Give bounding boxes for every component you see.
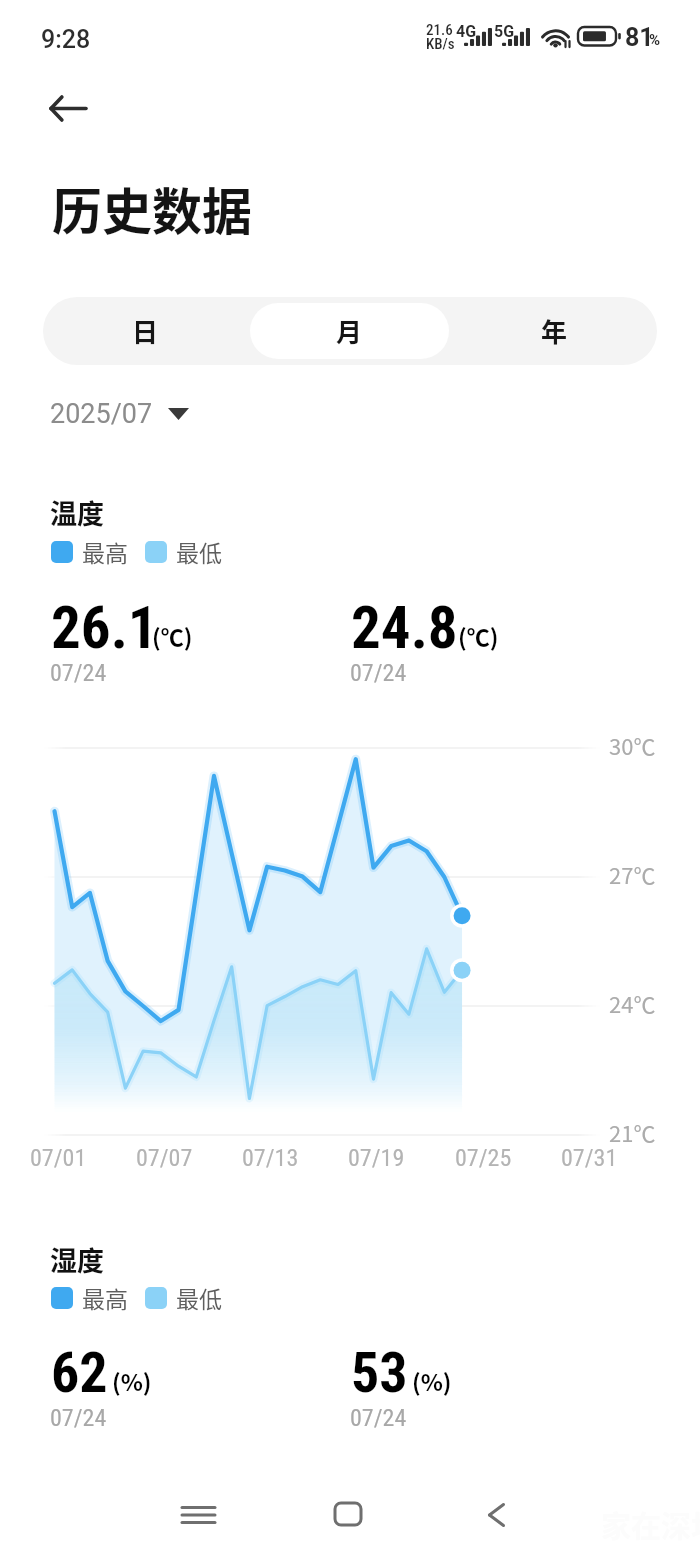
- button[interactable]: Home: [317, 1483, 379, 1545]
- staticText: 最低: [176, 1281, 222, 1314]
- staticText: (%): [112, 1364, 152, 1397]
- staticText: 26.1: [51, 593, 158, 662]
- staticText: KB/s: [426, 35, 455, 53]
- staticText: 2025/07: [50, 398, 153, 430]
- staticText: 4G: [456, 22, 477, 41]
- staticText: 24.8: [351, 593, 458, 662]
- staticText: 月: [336, 312, 363, 350]
- staticText: 07/24: [350, 1404, 407, 1432]
- staticText: 最高: [82, 535, 128, 568]
- staticText: 最高: [82, 1281, 128, 1314]
- staticText: 年: [541, 312, 568, 350]
- button[interactable]: 月: [250, 303, 449, 359]
- button[interactable]: 2025/07: [42, 394, 197, 434]
- staticText: 日: [132, 312, 159, 350]
- staticText: 湿度: [50, 1240, 104, 1279]
- staticText: 27℃: [609, 858, 656, 890]
- staticText: 07/24: [350, 659, 407, 687]
- staticText: 07/07: [136, 1144, 193, 1172]
- staticText: 9:28: [41, 25, 91, 54]
- staticText: 07/24: [50, 1404, 107, 1432]
- staticText: (℃): [458, 619, 499, 652]
- staticText: 07/25: [455, 1144, 512, 1172]
- staticText: %: [649, 31, 661, 49]
- button[interactable]: Recent apps: [167, 1484, 229, 1546]
- staticText: 07/24: [50, 659, 107, 687]
- button[interactable]: Back: [32, 78, 96, 138]
- staticText: 53: [351, 1340, 408, 1406]
- staticText: 30℃: [609, 729, 656, 761]
- staticText: 最低: [176, 535, 222, 568]
- staticText: 07/31: [561, 1144, 618, 1172]
- staticText: (%): [412, 1364, 452, 1397]
- staticText: 温度: [50, 493, 104, 532]
- staticText: 24℃: [609, 987, 656, 1019]
- staticText: 历史数据: [52, 172, 252, 244]
- staticText: 07/13: [242, 1144, 299, 1172]
- staticText: 62: [51, 1340, 108, 1406]
- button[interactable]: 年: [455, 303, 654, 359]
- button[interactable]: Back: [465, 1484, 527, 1546]
- staticText: 21.6: [426, 21, 453, 39]
- staticText: 07/19: [348, 1144, 405, 1172]
- staticText: (℃): [152, 619, 193, 652]
- button[interactable]: 日: [46, 303, 244, 359]
- staticText: 21℃: [609, 1116, 656, 1148]
- staticText: 5G: [494, 22, 515, 41]
- staticText: 81: [625, 23, 654, 52]
- staticText: 07/01: [30, 1144, 87, 1172]
